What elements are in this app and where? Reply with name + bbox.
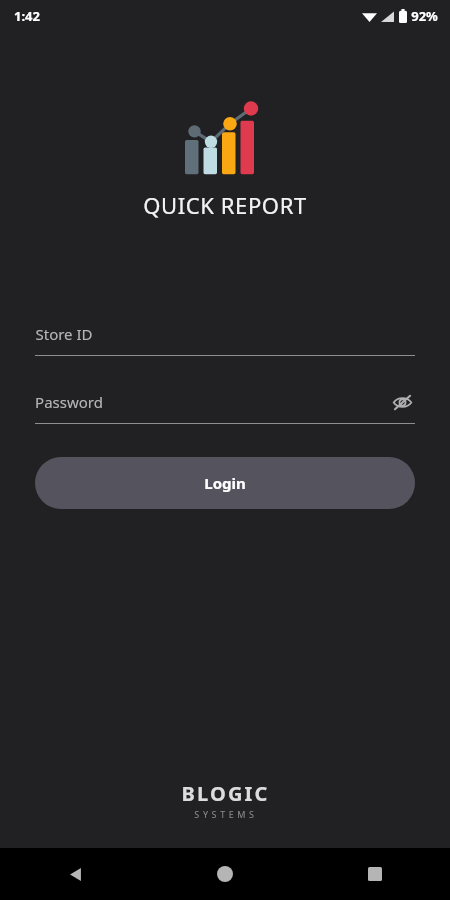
staticText: BLOGIC [181, 780, 270, 807]
button[interactable]: Store ID [35, 321, 415, 356]
staticText: Password [35, 392, 103, 412]
staticText: 1:42 [14, 7, 40, 25]
staticText: QUICK REPORT [143, 190, 307, 220]
staticText: SYSTEMS [194, 808, 258, 820]
staticText: Store ID [35, 324, 93, 344]
button[interactable]: Show password [389, 389, 415, 415]
staticText: Login [204, 473, 246, 493]
button[interactable]: Back [0, 848, 150, 900]
staticText: 92% [411, 7, 438, 25]
button[interactable]: Recent apps [300, 848, 450, 900]
button[interactable]: Password [35, 389, 415, 424]
button[interactable]: Login [35, 457, 415, 509]
button[interactable]: Home [150, 848, 300, 900]
